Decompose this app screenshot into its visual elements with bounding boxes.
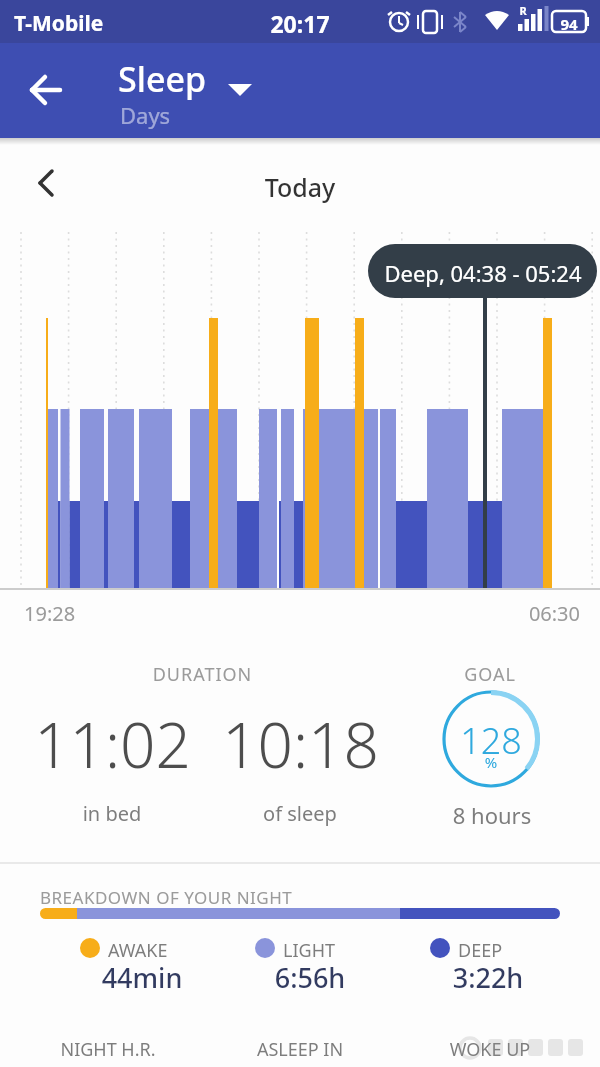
staticText: %	[442, 752, 540, 772]
staticText: 19:28	[24, 600, 104, 627]
staticText: GOAL	[440, 662, 540, 687]
staticText: 06:30	[500, 600, 580, 627]
staticText: Days	[120, 100, 240, 130]
staticText: of sleep	[250, 800, 350, 827]
staticText: 94	[553, 14, 585, 34]
staticText: Sleep	[118, 56, 238, 102]
staticText: Today	[220, 170, 380, 204]
staticText: 8 hours	[440, 800, 544, 830]
staticText: 11:02	[20, 702, 205, 786]
staticText: 10:18	[208, 702, 393, 786]
staticText: AWAKE	[108, 938, 188, 963]
staticText: 3:22h	[428, 959, 548, 996]
staticText: ASLEEP IN	[240, 1037, 360, 1062]
staticText: Deep, 04:38 - 05:24	[372, 258, 594, 288]
button[interactable]	[110, 55, 270, 130]
staticText: DURATION	[120, 662, 285, 687]
staticText: DEEP	[458, 938, 538, 963]
staticText: 128	[442, 716, 540, 765]
staticText: NIGHT H.R.	[48, 1037, 168, 1062]
button[interactable]	[20, 65, 72, 115]
button[interactable]	[442, 690, 540, 788]
staticText: LIGHT	[283, 938, 363, 963]
staticText: R	[517, 3, 529, 18]
staticText: WOKE UP	[430, 1037, 550, 1062]
staticText: T-Mobile	[14, 9, 164, 38]
staticText: in bed	[62, 800, 162, 827]
staticText: 6:56h	[250, 959, 370, 996]
staticText: 20:17	[260, 8, 340, 39]
staticText: 44min	[82, 959, 202, 996]
button[interactable]	[24, 160, 72, 208]
staticText: BREAKDOWN OF YOUR NIGHT	[40, 886, 340, 909]
